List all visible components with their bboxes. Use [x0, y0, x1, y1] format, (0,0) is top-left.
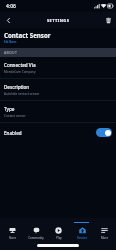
- staticText: 4:06: [6, 3, 16, 10]
- staticText: More: [101, 236, 108, 240]
- button[interactable]: Delete: [100, 12, 116, 28]
- staticText: Autohide contact sensor: [4, 92, 40, 96]
- staticText: Contact sensor: [4, 114, 26, 118]
- staticText: Community: [28, 236, 44, 240]
- button[interactable]: Play: [47, 218, 70, 241]
- staticText: SETTINGS: [47, 18, 70, 23]
- button[interactable]: Community: [24, 218, 47, 241]
- staticText: Enabled: [4, 130, 22, 136]
- button[interactable]: More: [93, 218, 116, 241]
- button[interactable]: Devices: [70, 218, 93, 241]
- button[interactable]: Store: [0, 218, 24, 241]
- staticText: MondoCam Company: [4, 70, 36, 74]
- button[interactable]: Description: [0, 79, 116, 100]
- staticText: Devices: [77, 236, 87, 240]
- button[interactable]: Back: [0, 12, 16, 28]
- button[interactable]: Connected Via: [0, 57, 116, 78]
- button[interactable]: Enabled: [0, 123, 116, 142]
- staticText: Type: [4, 106, 15, 112]
- button[interactable]: Type: [0, 101, 116, 122]
- staticText: Description: [4, 84, 30, 90]
- staticText: Store: [9, 236, 16, 240]
- staticText: ABOUT: [4, 50, 18, 55]
- staticText: Connected Via: [4, 62, 36, 68]
- button[interactable]: Edit Name: [4, 40, 17, 43]
- staticText: Play: [56, 236, 62, 240]
- staticText: Contact Sensor: [4, 31, 51, 39]
